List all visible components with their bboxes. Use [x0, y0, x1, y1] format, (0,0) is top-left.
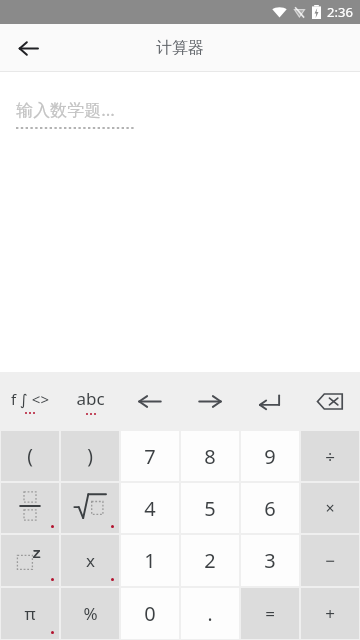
staticText: abc — [76, 387, 105, 410]
button[interactable]: Letters — [60, 372, 120, 430]
staticText: + — [325, 602, 335, 625]
button[interactable]: 4 — [121, 483, 179, 533]
staticText: 输入数学题... — [16, 98, 115, 121]
button[interactable]: ) — [61, 431, 119, 481]
staticText: f ∫ <> — [11, 389, 49, 409]
button[interactable]: Enter — [240, 372, 300, 430]
button[interactable]: Backspace — [300, 372, 360, 430]
staticText: π — [24, 602, 36, 625]
button[interactable]: x — [61, 535, 119, 586]
button[interactable]: Minus — [301, 535, 359, 586]
staticText: 1 — [144, 547, 156, 574]
button[interactable]: Move left — [120, 372, 180, 430]
staticText: ÷ — [325, 445, 335, 468]
staticText: 4 — [144, 495, 156, 522]
button[interactable]: Back — [6, 26, 50, 70]
staticText: 2:36 — [327, 3, 353, 21]
button[interactable]: 5 — [181, 483, 239, 533]
button[interactable]: 7 — [121, 431, 179, 481]
staticText: × — [325, 497, 335, 519]
button[interactable]: 6 — [241, 483, 299, 533]
staticText: x — [86, 549, 95, 572]
staticText: 6 — [264, 495, 276, 522]
button[interactable]: Square root — [61, 483, 119, 533]
button[interactable]: 3 — [241, 535, 299, 586]
button[interactable]: ( — [1, 431, 59, 481]
staticText: 7 — [144, 443, 156, 470]
button[interactable]: Fraction — [1, 483, 59, 533]
button[interactable]: 1 — [121, 535, 179, 586]
button[interactable]: 0 — [121, 588, 179, 639]
staticText: 2 — [204, 547, 216, 574]
button[interactable]: Power — [1, 535, 59, 586]
staticText: ( — [27, 443, 33, 469]
button[interactable]: Equals — [241, 588, 299, 639]
button[interactable]: 9 — [241, 431, 299, 481]
staticText: 9 — [264, 443, 276, 470]
staticText: . — [207, 601, 213, 627]
staticText: = — [265, 602, 275, 625]
staticText: − — [325, 549, 335, 572]
button[interactable]: Functions — [0, 372, 60, 430]
staticText: 0 — [144, 600, 156, 627]
staticText: 8 — [204, 443, 216, 470]
button[interactable]: 2 — [181, 535, 239, 586]
staticText: 计算器 — [156, 38, 204, 58]
staticText: % — [83, 602, 98, 625]
button[interactable]: Decimal point — [181, 588, 239, 639]
staticText: 5 — [204, 495, 216, 522]
button[interactable]: 8 — [181, 431, 239, 481]
button[interactable]: Percent — [61, 588, 119, 639]
staticText: 3 — [264, 547, 276, 574]
button[interactable]: Divide — [301, 431, 359, 481]
button[interactable]: Multiply — [301, 483, 359, 533]
staticText: ) — [87, 443, 93, 469]
button[interactable]: Move right — [180, 372, 240, 430]
button[interactable]: Pi — [1, 588, 59, 639]
button[interactable]: Plus — [301, 588, 359, 639]
